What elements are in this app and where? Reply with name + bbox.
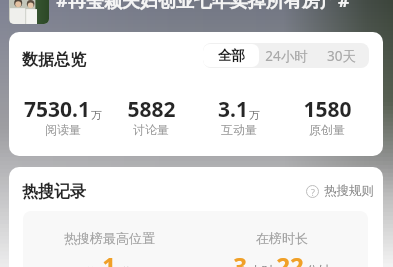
staticText: 5882 xyxy=(127,95,176,124)
staticText: 1580 xyxy=(303,95,352,124)
staticText: 热搜规则 xyxy=(324,183,374,199)
staticText: 阅读量 xyxy=(45,122,81,137)
button[interactable]: 24小时 xyxy=(259,44,314,67)
button[interactable]: 30天 xyxy=(314,44,369,67)
staticText: 热搜榜最高位置 xyxy=(64,230,155,246)
button[interactable]: 全部 xyxy=(203,44,259,67)
staticText: 分钟 xyxy=(306,263,331,267)
button[interactable]: ? xyxy=(306,183,374,199)
staticText: 原创量 xyxy=(309,122,345,137)
staticText: 万 xyxy=(249,108,260,122)
staticText: 3.1 xyxy=(218,95,248,124)
staticText: ? xyxy=(311,186,315,198)
staticText: 22 xyxy=(276,249,304,267)
staticText: 互动量 xyxy=(221,122,257,137)
staticText: 小时 xyxy=(249,263,274,267)
staticText: 7530.1 xyxy=(24,95,90,124)
staticText: 在榜时长 xyxy=(256,230,308,246)
staticText: #冉莹颖夫妇创业七年卖掉所有房产# xyxy=(56,0,350,13)
staticText: 全部 xyxy=(218,47,245,64)
staticText: 数据总览 xyxy=(22,50,86,70)
staticText: 24小时 xyxy=(265,47,308,65)
staticText: 1 xyxy=(102,249,116,267)
staticText: 30天 xyxy=(327,47,356,65)
staticText: 万 xyxy=(91,108,102,122)
staticText: 位 xyxy=(121,265,133,267)
staticText: 讨论量 xyxy=(133,122,169,137)
staticText: 热搜记录 xyxy=(22,182,86,202)
staticText: 3 xyxy=(233,249,247,267)
